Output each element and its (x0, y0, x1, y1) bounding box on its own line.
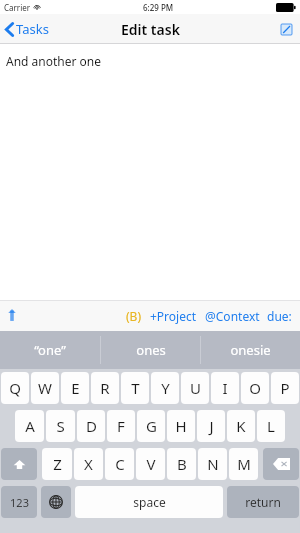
button[interactable]: Change keyboard (41, 486, 71, 518)
button[interactable]: L (257, 410, 285, 442)
staticText: Carrier (4, 2, 31, 13)
staticText: due: (267, 308, 292, 324)
staticText: M (237, 454, 251, 474)
staticText: J (209, 416, 214, 436)
button[interactable]: W (31, 372, 59, 404)
staticText: Edit task (121, 20, 180, 39)
staticText: Z (53, 454, 62, 474)
button[interactable]: S (46, 410, 75, 442)
button[interactable]: due: (264, 302, 295, 330)
button[interactable]: J (197, 410, 225, 442)
staticText: I (222, 378, 228, 398)
staticText: Tasks (16, 20, 49, 38)
staticText: X (84, 454, 93, 474)
button[interactable]: N (198, 448, 227, 480)
button[interactable]: Tasks (0, 16, 57, 42)
staticText: U (190, 378, 201, 398)
staticText: And another one (6, 53, 102, 69)
button[interactable]: V (136, 448, 165, 480)
staticText: “one” (34, 341, 66, 359)
staticText: @Context (205, 308, 260, 324)
staticText: P (280, 378, 290, 398)
staticText: R (100, 378, 110, 398)
staticText: E (71, 378, 80, 398)
button[interactable]: O (241, 372, 269, 404)
staticText: F (117, 416, 125, 436)
button[interactable]: ones (101, 331, 200, 369)
button[interactable]: Mark complete (273, 19, 300, 40)
button[interactable]: Priority (0, 303, 24, 328)
button[interactable]: P (271, 372, 299, 404)
button[interactable]: G (137, 410, 165, 442)
button[interactable]: H (167, 410, 195, 442)
button[interactable]: 123 (1, 486, 37, 518)
staticText: L (267, 416, 275, 436)
staticText: V (146, 454, 156, 474)
staticText: return (245, 494, 281, 510)
button[interactable]: R (91, 372, 119, 404)
button[interactable]: C (105, 448, 134, 480)
button[interactable]: Backspace (263, 448, 299, 480)
button[interactable]: U (181, 372, 209, 404)
staticText: S (56, 416, 65, 436)
staticText: G (146, 416, 157, 436)
button[interactable]: I (211, 372, 239, 404)
staticText: D (86, 416, 97, 436)
staticText: N (207, 454, 219, 474)
staticText: W (38, 378, 52, 398)
button[interactable]: X (74, 448, 103, 480)
staticText: H (175, 416, 187, 436)
button[interactable]: M (229, 448, 258, 480)
button[interactable]: Shift (1, 448, 37, 480)
staticText: K (236, 416, 246, 436)
staticText: space (133, 494, 166, 510)
staticText: +Project (150, 308, 197, 324)
button[interactable]: F (107, 410, 135, 442)
button[interactable]: @Context (201, 302, 264, 330)
staticText: A (25, 416, 35, 436)
staticText: C (115, 454, 125, 474)
staticText: Q (9, 378, 21, 398)
button[interactable]: (B) (122, 302, 146, 330)
button[interactable]: return (227, 486, 299, 518)
staticText: Y (161, 378, 170, 398)
staticText: O (249, 378, 261, 398)
staticText: (B) (126, 308, 142, 324)
staticText: T (131, 378, 140, 398)
button[interactable]: “one” (0, 331, 100, 369)
button[interactable]: +Project (146, 302, 201, 330)
button[interactable]: T (121, 372, 149, 404)
button[interactable]: K (227, 410, 255, 442)
staticText: 6:29 PM (143, 2, 174, 13)
button[interactable]: A (15, 410, 44, 442)
button[interactable]: Z (42, 448, 72, 480)
button[interactable]: B (167, 448, 196, 480)
staticText: 123 (10, 495, 29, 510)
button[interactable]: space (75, 486, 223, 518)
button[interactable]: E (61, 372, 89, 404)
staticText: ones (136, 341, 166, 359)
button[interactable]: Q (1, 372, 29, 404)
button[interactable]: D (77, 410, 105, 442)
staticText: B (177, 454, 187, 474)
button[interactable]: Y (151, 372, 179, 404)
staticText: onesie (230, 341, 271, 359)
button[interactable]: onesie (201, 331, 300, 369)
